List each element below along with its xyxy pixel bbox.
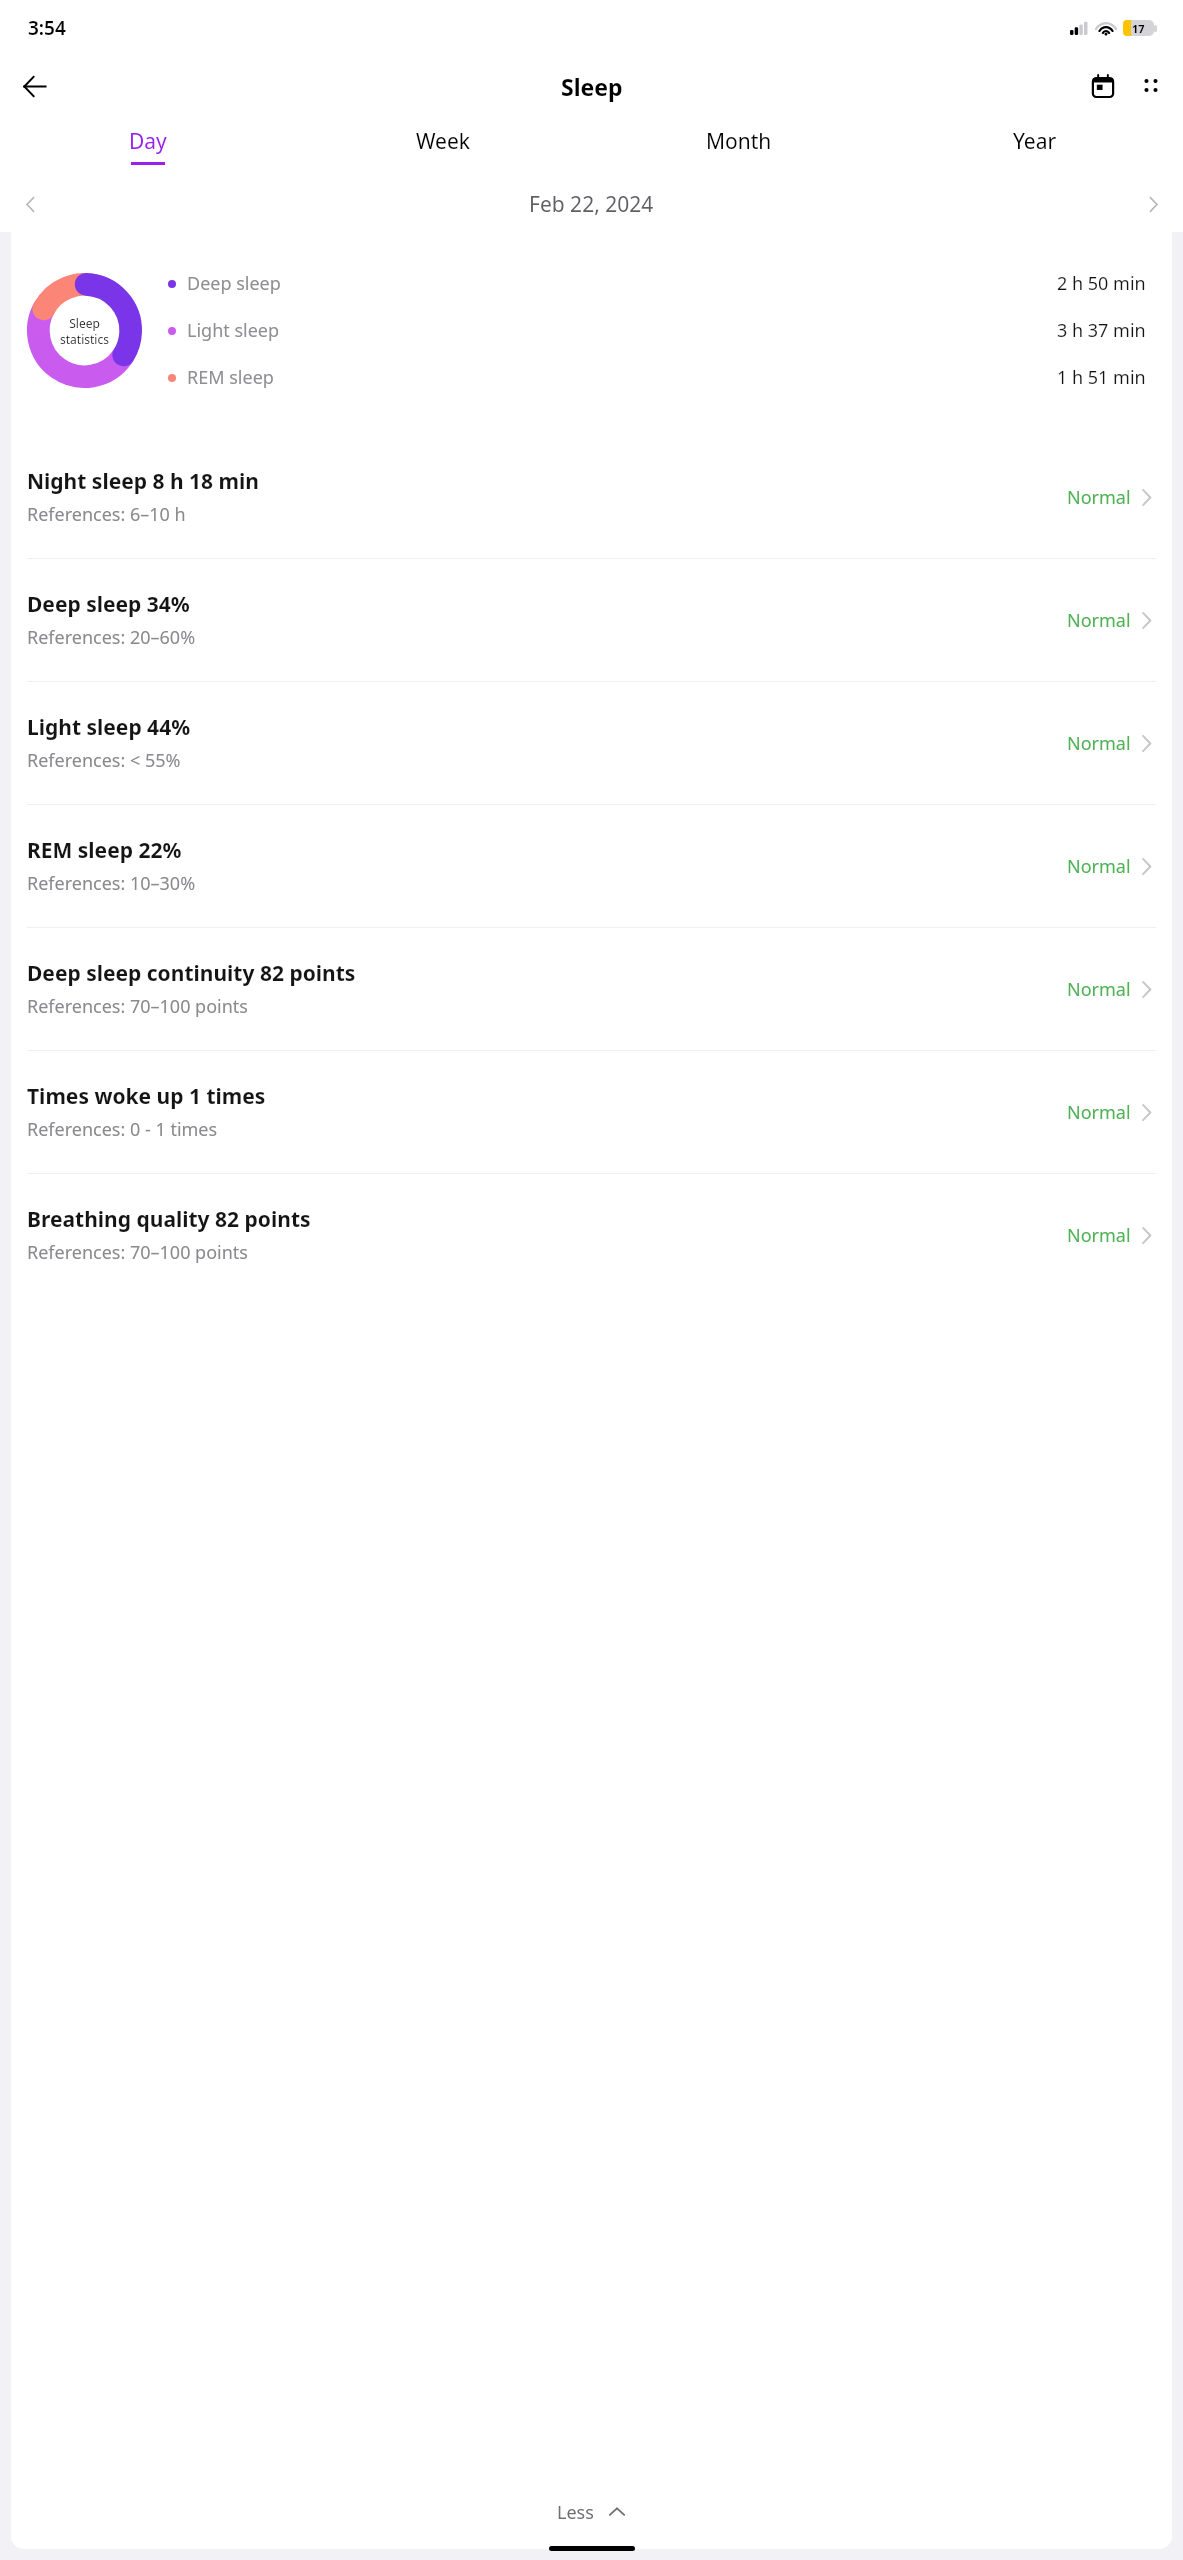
- staticText: References: 10–30%: [27, 871, 196, 896]
- staticText: Sleep: [561, 71, 623, 102]
- staticText: 1 h 51 min: [1057, 365, 1146, 390]
- staticText: Normal: [1067, 1223, 1131, 1248]
- staticText: Breathing quality 82 points: [27, 1205, 311, 1234]
- staticText: 3 h 37 min: [1057, 318, 1146, 343]
- button[interactable]: Times woke up 1 times: [11, 1051, 1172, 1173]
- staticText: Normal: [1067, 854, 1131, 879]
- staticText: Deep sleep: [187, 271, 281, 296]
- button[interactable]: Less: [11, 2489, 1172, 2535]
- staticText: References: 70–100 points: [27, 1240, 248, 1265]
- staticText: Sleep: [69, 315, 100, 331]
- button[interactable]: Year: [887, 116, 1183, 176]
- staticText: References: 6–10 h: [27, 502, 186, 527]
- staticText: 3:54: [28, 15, 66, 41]
- button[interactable]: Calendar: [1079, 62, 1127, 110]
- staticText: Light sleep: [187, 318, 280, 343]
- staticText: Year: [1013, 127, 1057, 156]
- button[interactable]: Previous day: [8, 182, 52, 226]
- button[interactable]: Month: [591, 116, 887, 176]
- staticText: REM sleep: [187, 365, 274, 390]
- staticText: Normal: [1067, 485, 1131, 510]
- staticText: Less: [557, 2500, 594, 2525]
- staticText: References: 20–60%: [27, 625, 196, 650]
- staticText: Feb 22, 2024: [529, 190, 654, 219]
- staticText: 17: [1132, 21, 1145, 36]
- staticText: Week: [416, 127, 471, 156]
- staticText: Night sleep 8 h 18 min: [27, 467, 259, 496]
- button[interactable]: Night sleep 8 h 18 min: [11, 436, 1172, 558]
- button[interactable]: Deep sleep 34%: [11, 559, 1172, 681]
- button[interactable]: Week: [295, 116, 591, 176]
- staticText: References: 0 - 1 times: [27, 1117, 218, 1142]
- button[interactable]: More options: [1127, 62, 1175, 110]
- staticText: 2 h 50 min: [1057, 271, 1146, 296]
- staticText: References: 70–100 points: [27, 994, 248, 1019]
- staticText: References: < 55%: [27, 748, 181, 773]
- staticText: Deep sleep 34%: [27, 590, 190, 619]
- staticText: Deep sleep continuity 82 points: [27, 959, 356, 988]
- button[interactable]: REM sleep 22%: [11, 805, 1172, 927]
- staticText: REM sleep 22%: [27, 836, 182, 865]
- staticText: Normal: [1067, 608, 1131, 633]
- button[interactable]: Day: [0, 116, 295, 176]
- button[interactable]: Light sleep 44%: [11, 682, 1172, 804]
- staticText: Day: [129, 127, 167, 156]
- button[interactable]: Back: [10, 62, 58, 110]
- staticText: Normal: [1067, 977, 1131, 1002]
- staticText: Normal: [1067, 1100, 1131, 1125]
- staticText: Normal: [1067, 731, 1131, 756]
- staticText: statistics: [60, 331, 109, 347]
- button[interactable]: Next day: [1131, 182, 1175, 226]
- staticText: Light sleep 44%: [27, 713, 191, 742]
- button[interactable]: Breathing quality 82 points: [11, 1174, 1172, 1296]
- staticText: Times woke up 1 times: [27, 1082, 266, 1111]
- staticText: Month: [706, 127, 772, 156]
- button[interactable]: Deep sleep continuity 82 points: [11, 928, 1172, 1050]
